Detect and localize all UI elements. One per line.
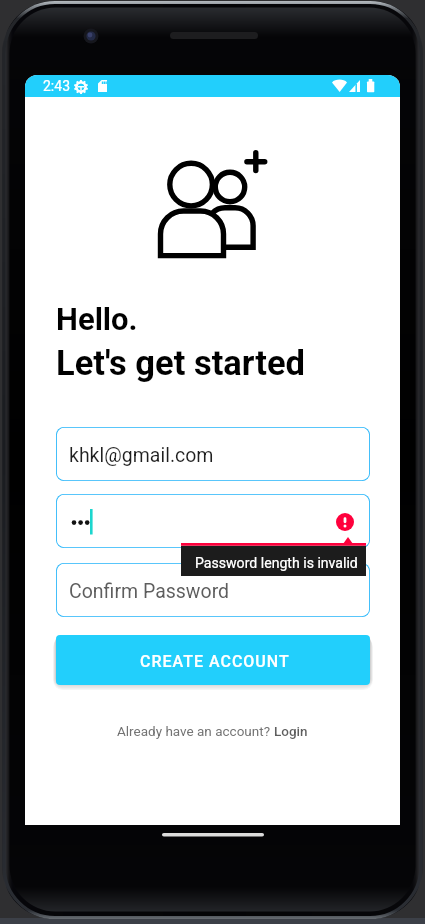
button[interactable]: Confirm Password	[56, 563, 370, 617]
button[interactable]: Already have an account?	[113, 721, 312, 741]
staticText: khkl@gmail.com	[69, 444, 214, 467]
staticText: Let's get started	[56, 343, 305, 383]
staticText: Already have an account?	[117, 723, 274, 739]
button[interactable]: CREATE ACCOUNT	[56, 635, 370, 685]
button[interactable]: Password	[56, 494, 370, 548]
staticText: Login	[274, 723, 308, 739]
staticText: Hello.	[56, 301, 138, 337]
staticText: 2:43	[43, 78, 70, 94]
staticText: Confirm Password	[69, 580, 230, 603]
staticText: CREATE ACCOUNT	[140, 652, 290, 671]
button[interactable]: khkl@gmail.com	[56, 427, 370, 481]
staticText: Password length is invalid	[195, 555, 358, 572]
